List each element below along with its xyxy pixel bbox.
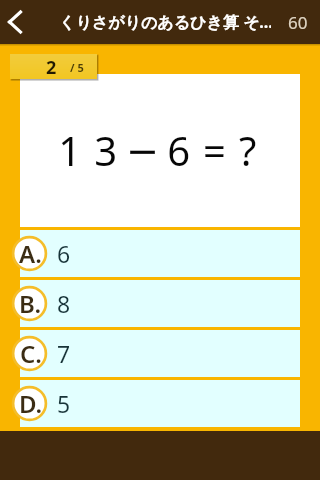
staticText: C. (20, 337, 42, 370)
button[interactable]: 6 (11, 230, 300, 277)
staticText: 6 (57, 238, 71, 269)
staticText: 8 (57, 288, 71, 319)
button[interactable]: 8 (11, 280, 300, 327)
button[interactable]: 7 (11, 330, 300, 377)
staticText: A. (19, 237, 42, 270)
button[interactable]: Back (0, 0, 44, 44)
staticText: B. (19, 287, 42, 320)
staticText: 7 (57, 338, 71, 369)
staticText: / 5 (70, 60, 84, 75)
staticText: 1 3 ─ 6 = ? (58, 123, 258, 177)
button[interactable]: 2 (10, 54, 97, 79)
button[interactable]: 5 (11, 380, 300, 427)
staticText: D. (19, 387, 43, 420)
staticText: 5 (57, 388, 71, 419)
staticText: 60 (288, 11, 308, 34)
staticText: くりさがりのあるひき算 そ... (59, 11, 271, 33)
staticText: 2 (46, 55, 57, 80)
